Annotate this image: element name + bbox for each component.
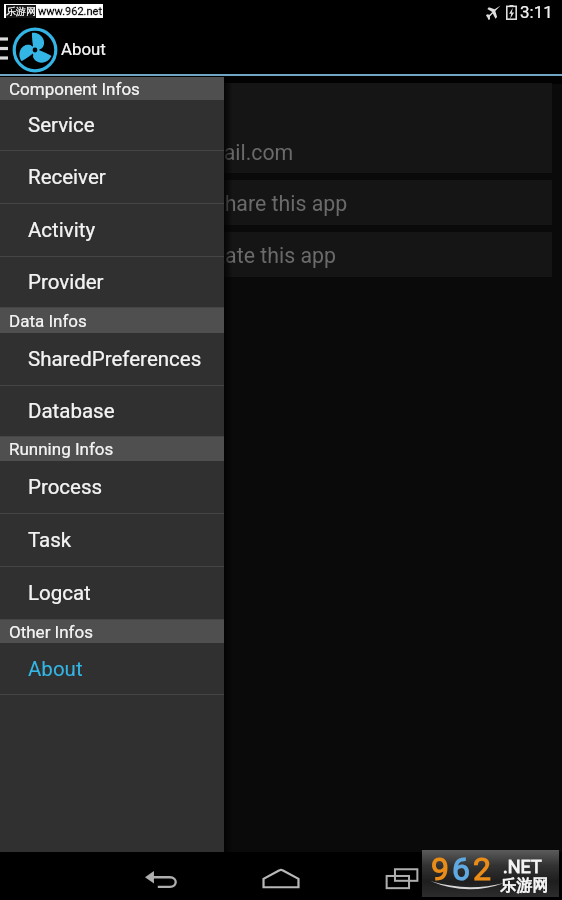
staticText: www.962.net (38, 5, 102, 18)
staticText: Service (28, 113, 95, 137)
button[interactable]: Database (0, 386, 224, 436)
staticText: .NET (503, 856, 542, 877)
staticText: appdeveloper@gmail.com (46, 140, 294, 165)
staticText: 乐游网 (500, 876, 548, 896)
button[interactable]: Share this app (10, 180, 552, 225)
staticText: Other Infos (9, 622, 94, 642)
staticText: 6 (452, 850, 473, 888)
button[interactable]: Open navigation drawer (0, 23, 12, 74)
staticText: 9 (431, 850, 452, 888)
button[interactable]: Back (131, 852, 191, 900)
staticText: Logcat (28, 581, 91, 605)
button[interactable]: Receiver (0, 151, 224, 203)
staticText: Rate this app (212, 243, 336, 268)
button[interactable]: SharedPreferences (0, 333, 224, 385)
staticText: Process (28, 475, 103, 499)
staticText: Component Infos (9, 79, 140, 99)
staticText: Database (28, 399, 115, 423)
button[interactable]: Activity (0, 204, 224, 256)
staticText: Activity (28, 218, 96, 242)
button[interactable]: Rate this app (10, 232, 552, 277)
staticText: Task (28, 528, 72, 552)
button[interactable]: Task (0, 514, 224, 566)
button[interactable]: Logcat (0, 567, 224, 619)
staticText: SharedPreferences (28, 347, 202, 371)
staticText: Receiver (28, 165, 106, 189)
staticText: 2 (473, 850, 494, 888)
staticText: Share this app (212, 191, 348, 216)
staticText: 乐游网 (6, 5, 36, 18)
staticText: 3:11 (520, 2, 553, 22)
staticText: Data Infos (9, 311, 87, 331)
button[interactable]: Provider (0, 257, 224, 307)
button[interactable]: Process (0, 461, 224, 513)
staticText: About (28, 657, 83, 681)
staticText: About (61, 39, 106, 59)
button[interactable]: About (0, 643, 224, 694)
staticText: Provider (28, 270, 104, 294)
button[interactable]: appdeveloper@gmail.com (10, 83, 552, 173)
button[interactable]: Service (0, 100, 224, 150)
button[interactable]: Home (251, 852, 311, 900)
button[interactable]: Recent apps (372, 852, 432, 900)
staticText: Running Infos (9, 439, 114, 459)
